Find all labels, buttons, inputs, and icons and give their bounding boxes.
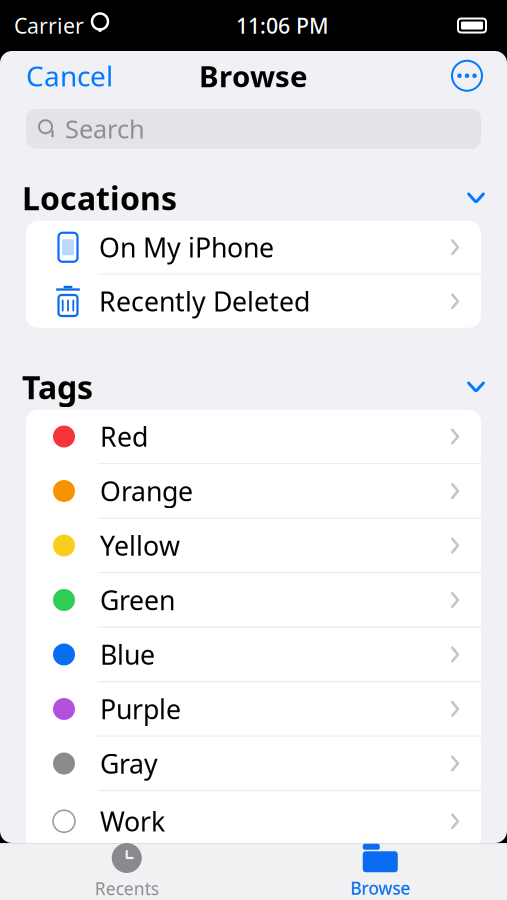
button[interactable]: Recently Deleted — [26, 275, 481, 328]
staticText: Tags — [22, 365, 93, 408]
button[interactable]: Yellow — [26, 519, 481, 572]
staticText: Gray — [100, 746, 158, 781]
button[interactable]: Cancel — [18, 49, 121, 102]
staticText: Locations — [22, 176, 177, 219]
staticText: On My iPhone — [99, 229, 274, 265]
button[interactable]: Collapse Tags — [459, 372, 493, 402]
staticText: 11:06 PM — [236, 11, 329, 40]
button[interactable]: Recents — [0, 843, 253, 900]
staticText: Work — [100, 803, 165, 839]
staticText: Browse — [350, 876, 410, 899]
button[interactable]: More — [447, 56, 487, 96]
button[interactable]: Orange — [26, 464, 481, 518]
staticText: Search — [65, 112, 145, 145]
staticText: Cancel — [26, 57, 113, 94]
button[interactable]: Green — [26, 573, 481, 627]
button[interactable]: Search — [26, 109, 481, 149]
staticText: Recents — [95, 877, 159, 900]
button[interactable]: Blue — [26, 628, 481, 681]
staticText: Green — [100, 582, 175, 618]
button[interactable]: Purple — [26, 682, 481, 736]
staticText: Orange — [100, 473, 193, 509]
staticText: Red — [100, 419, 148, 454]
staticText: Carrier — [14, 11, 84, 40]
staticText: Recently Deleted — [99, 283, 310, 319]
staticText: Blue — [100, 637, 155, 672]
button[interactable]: Work — [26, 791, 481, 851]
staticText: Purple — [100, 691, 181, 727]
button[interactable]: Gray — [26, 737, 481, 790]
button[interactable]: Collapse Locations — [459, 183, 493, 213]
button[interactable]: On My iPhone — [26, 221, 481, 274]
staticText: Browse — [199, 56, 308, 95]
button[interactable]: Red — [26, 410, 481, 463]
staticText: Yellow — [100, 528, 180, 563]
button[interactable]: Browse — [253, 843, 507, 900]
